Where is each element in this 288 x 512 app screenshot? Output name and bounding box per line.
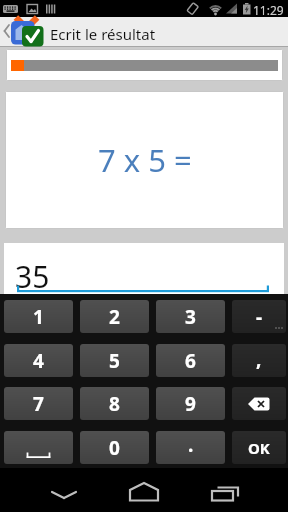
staticText: 4	[33, 348, 44, 374]
staticText: 11:29	[253, 2, 284, 18]
staticText: ,	[256, 346, 262, 372]
button[interactable]	[34, 468, 94, 512]
staticText: OK	[248, 438, 270, 458]
button[interactable]: ,	[232, 344, 286, 377]
button[interactable]	[114, 468, 174, 512]
staticText: 7 x 5 =	[98, 139, 192, 181]
button[interactable]: 3	[156, 300, 225, 333]
staticText: 6	[185, 348, 196, 374]
button[interactable]	[232, 387, 286, 420]
staticText: 2	[109, 304, 120, 330]
staticText: 1	[33, 304, 44, 330]
button[interactable]: 8	[80, 387, 149, 420]
button[interactable]: .	[156, 431, 225, 464]
staticText: 0	[109, 435, 120, 461]
staticText: 3	[185, 304, 196, 330]
staticText: .	[188, 432, 194, 458]
button[interactable]	[194, 468, 254, 512]
button[interactable]: 9	[156, 387, 225, 420]
button[interactable]: Ecrit le résultat	[0, 17, 288, 47]
staticText: 7	[33, 391, 44, 417]
button[interactable]: 2	[80, 300, 149, 333]
staticText: 8	[109, 391, 120, 417]
button[interactable]: 0	[80, 431, 149, 464]
button[interactable]: 4	[4, 344, 73, 377]
button[interactable]: 6	[156, 344, 225, 377]
button[interactable]: -	[232, 300, 286, 333]
staticText: -	[256, 304, 263, 330]
button[interactable]: OK	[232, 431, 286, 464]
button[interactable]: 7	[4, 387, 73, 420]
button[interactable]: 1	[4, 300, 73, 333]
button[interactable]	[4, 431, 73, 464]
staticText: 35	[15, 256, 50, 297]
button[interactable]: 7 x 5 =	[5, 91, 284, 229]
staticText: Ecrit le résultat	[50, 24, 156, 44]
staticText: 9	[185, 391, 196, 417]
button[interactable]: 5	[80, 344, 149, 377]
button[interactable]: 35	[4, 243, 284, 294]
staticText: 5	[109, 348, 120, 374]
